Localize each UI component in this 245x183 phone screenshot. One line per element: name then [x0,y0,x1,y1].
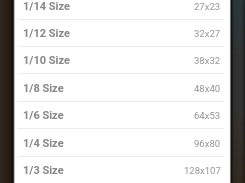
button[interactable]: 1/10 Size [0,47,245,74]
staticText: 32x27 [194,28,221,39]
staticText: 1/8 Size [23,82,64,95]
staticText: 1/4 Size [23,137,64,150]
staticText: 1/6 Size [23,109,64,122]
staticText: 64x53 [194,110,221,121]
button[interactable]: 1/14 Size [0,0,245,20]
staticText: 128x107 [184,165,221,176]
staticText: 48x40 [194,83,221,94]
staticText: 1/3 Size [23,164,64,177]
staticText: 1/10 Size [23,54,70,67]
staticText: 1/14 Size [23,0,70,13]
button[interactable]: 1/12 Size [0,20,245,47]
staticText: 1/12 Size [23,27,70,40]
button[interactable]: 1/8 Size [0,74,245,102]
staticText: 38x32 [194,55,221,66]
staticText: 96x80 [194,138,221,149]
button[interactable]: 1/6 Size [0,102,245,129]
staticText: 27x23 [194,1,221,12]
button[interactable]: 1/3 Size [0,157,245,183]
button[interactable]: 1/4 Size [0,129,245,157]
